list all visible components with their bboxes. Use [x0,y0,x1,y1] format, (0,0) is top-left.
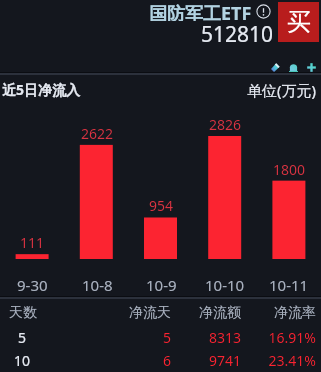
button[interactable]: Add to watchlist [304,60,318,74]
staticText: 净流额 [199,304,241,321]
staticText: 9-30 [17,275,48,295]
staticText: 买 [287,7,311,37]
staticText: 单位(万元) [247,80,317,100]
button[interactable]: 天数 [0,304,321,321]
staticText: 天数 [9,304,37,321]
staticText: 净流率 [274,304,316,321]
button[interactable]: Price alert [286,60,300,74]
staticText: 16.91% [268,328,316,345]
staticText: 近5日净流入 [2,80,81,99]
staticText: 5 [162,328,171,345]
button[interactable]: 10 [0,351,321,368]
staticText: 23.41% [268,351,316,368]
staticText: 10-11 [269,275,309,295]
button[interactable]: Fund information [255,3,271,19]
button[interactable]: 买 [278,2,319,42]
staticText: 1800 [273,160,306,179]
staticText: 512810 [201,20,274,49]
staticText: 9741 [208,351,241,368]
staticText: 8313 [208,328,241,345]
staticText: 6 [162,351,171,368]
staticText: 2622 [81,124,114,143]
staticText: 10-9 [146,275,177,295]
staticText: 10 [14,351,31,368]
staticText: 国防军工ETF [149,1,252,21]
staticText: 5 [18,328,27,345]
staticText: 111 [20,233,45,252]
button[interactable]: 5 [0,328,321,345]
staticText: 净流天 [129,304,171,321]
staticText: 10-8 [82,275,113,295]
staticText: 2826 [209,115,242,134]
staticText: 954 [149,196,174,215]
button[interactable]: Edit [268,60,282,74]
staticText: 10-10 [205,275,245,295]
